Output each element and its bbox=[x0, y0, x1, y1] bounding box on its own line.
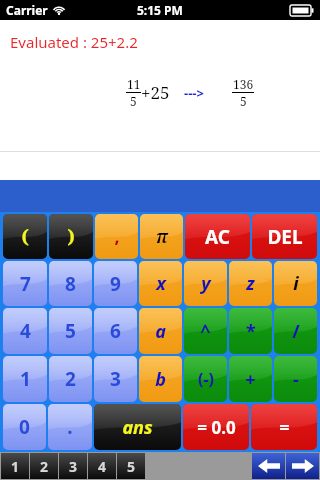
staticText: ) bbox=[67, 224, 75, 249]
staticText: 3 bbox=[69, 457, 78, 476]
staticText: y bbox=[201, 271, 211, 296]
staticText: Carrier bbox=[6, 2, 48, 18]
button[interactable]: Previous bbox=[252, 453, 285, 479]
staticText: 5 bbox=[127, 457, 136, 476]
button[interactable]: 7 bbox=[3, 261, 47, 306]
button[interactable]: 3 bbox=[59, 453, 87, 479]
button[interactable]: x bbox=[139, 261, 182, 306]
button[interactable]: ) bbox=[49, 214, 93, 259]
button[interactable]: ^ bbox=[184, 308, 227, 354]
button[interactable]: 6 bbox=[94, 308, 137, 354]
staticText: 5 bbox=[65, 318, 76, 344]
staticText: 136 bbox=[233, 76, 254, 92]
button[interactable]: a bbox=[139, 308, 182, 354]
button[interactable]: = 0.0 bbox=[183, 404, 249, 450]
staticText: i bbox=[293, 271, 299, 296]
staticText: 11 bbox=[127, 76, 141, 92]
button[interactable]: / bbox=[274, 308, 317, 354]
staticText: 4 bbox=[98, 457, 107, 476]
button[interactable]: Next bbox=[286, 453, 319, 479]
staticText: - bbox=[293, 367, 299, 392]
button[interactable]: * bbox=[229, 308, 272, 354]
staticText: = 0.0 bbox=[197, 416, 236, 439]
button[interactable]: 8 bbox=[49, 261, 92, 306]
staticText: ---> bbox=[184, 84, 204, 102]
staticText: x bbox=[156, 271, 166, 296]
staticText: ( bbox=[21, 224, 29, 249]
staticText: 5 bbox=[130, 93, 137, 109]
staticText: 2 bbox=[40, 457, 49, 476]
staticText: DEL bbox=[267, 224, 303, 250]
staticText: = bbox=[279, 415, 290, 440]
button[interactable]: AC bbox=[185, 214, 250, 259]
staticText: (-) bbox=[198, 368, 214, 390]
staticText: 0 bbox=[19, 414, 30, 440]
button[interactable]: 4 bbox=[88, 453, 116, 479]
button[interactable]: + bbox=[229, 356, 272, 402]
staticText: 7 bbox=[20, 271, 31, 297]
staticText: 2 bbox=[65, 366, 76, 392]
button[interactable]: 3 bbox=[94, 356, 137, 402]
staticText: 9 bbox=[110, 271, 121, 297]
button[interactable]: 5 bbox=[49, 308, 92, 354]
button[interactable]: 2 bbox=[49, 356, 92, 402]
staticText: 1 bbox=[11, 457, 20, 476]
staticText: b bbox=[155, 367, 166, 392]
staticText: 6 bbox=[110, 318, 121, 344]
staticText: 8 bbox=[65, 271, 76, 297]
button[interactable]: z bbox=[229, 261, 272, 306]
button[interactable]: 5 bbox=[117, 453, 145, 479]
button[interactable]: 2 bbox=[30, 453, 58, 479]
staticText: 4 bbox=[20, 318, 31, 344]
staticText: Evaluated : 25+2.2 bbox=[10, 32, 138, 52]
button[interactable]: 1 bbox=[3, 356, 47, 402]
staticText: ans bbox=[122, 415, 153, 440]
button[interactable]: 1 bbox=[1, 453, 29, 479]
staticText: 3 bbox=[110, 366, 121, 392]
button[interactable]: y bbox=[184, 261, 227, 306]
button[interactable]: π bbox=[140, 214, 183, 259]
button[interactable]: i bbox=[274, 261, 317, 306]
button[interactable]: , bbox=[95, 214, 138, 259]
button[interactable]: - bbox=[274, 356, 317, 402]
staticText: * bbox=[246, 319, 256, 344]
staticText: 1 bbox=[20, 366, 31, 392]
button[interactable]: 9 bbox=[94, 261, 137, 306]
staticText: 5 bbox=[240, 93, 247, 109]
button[interactable]: b bbox=[139, 356, 182, 402]
staticText: + bbox=[245, 367, 256, 392]
button[interactable]: 4 bbox=[3, 308, 47, 354]
staticText: / bbox=[292, 319, 300, 344]
staticText: π bbox=[156, 224, 168, 249]
button[interactable]: ans bbox=[94, 404, 181, 450]
staticText: 5:15 PM bbox=[137, 2, 183, 18]
button[interactable]: = bbox=[251, 404, 317, 450]
button[interactable]: . bbox=[48, 404, 92, 450]
button[interactable]: DEL bbox=[252, 214, 317, 259]
staticText: +25 bbox=[141, 81, 170, 104]
button[interactable]: 0 bbox=[3, 404, 46, 450]
staticText: z bbox=[246, 271, 255, 296]
staticText: , bbox=[114, 224, 120, 249]
staticText: ^ bbox=[200, 319, 211, 344]
button[interactable]: ( bbox=[3, 214, 47, 259]
staticText: a bbox=[155, 319, 166, 344]
staticText: AC bbox=[205, 224, 230, 250]
button[interactable]: (-) bbox=[184, 356, 227, 402]
staticText: . bbox=[67, 414, 73, 440]
